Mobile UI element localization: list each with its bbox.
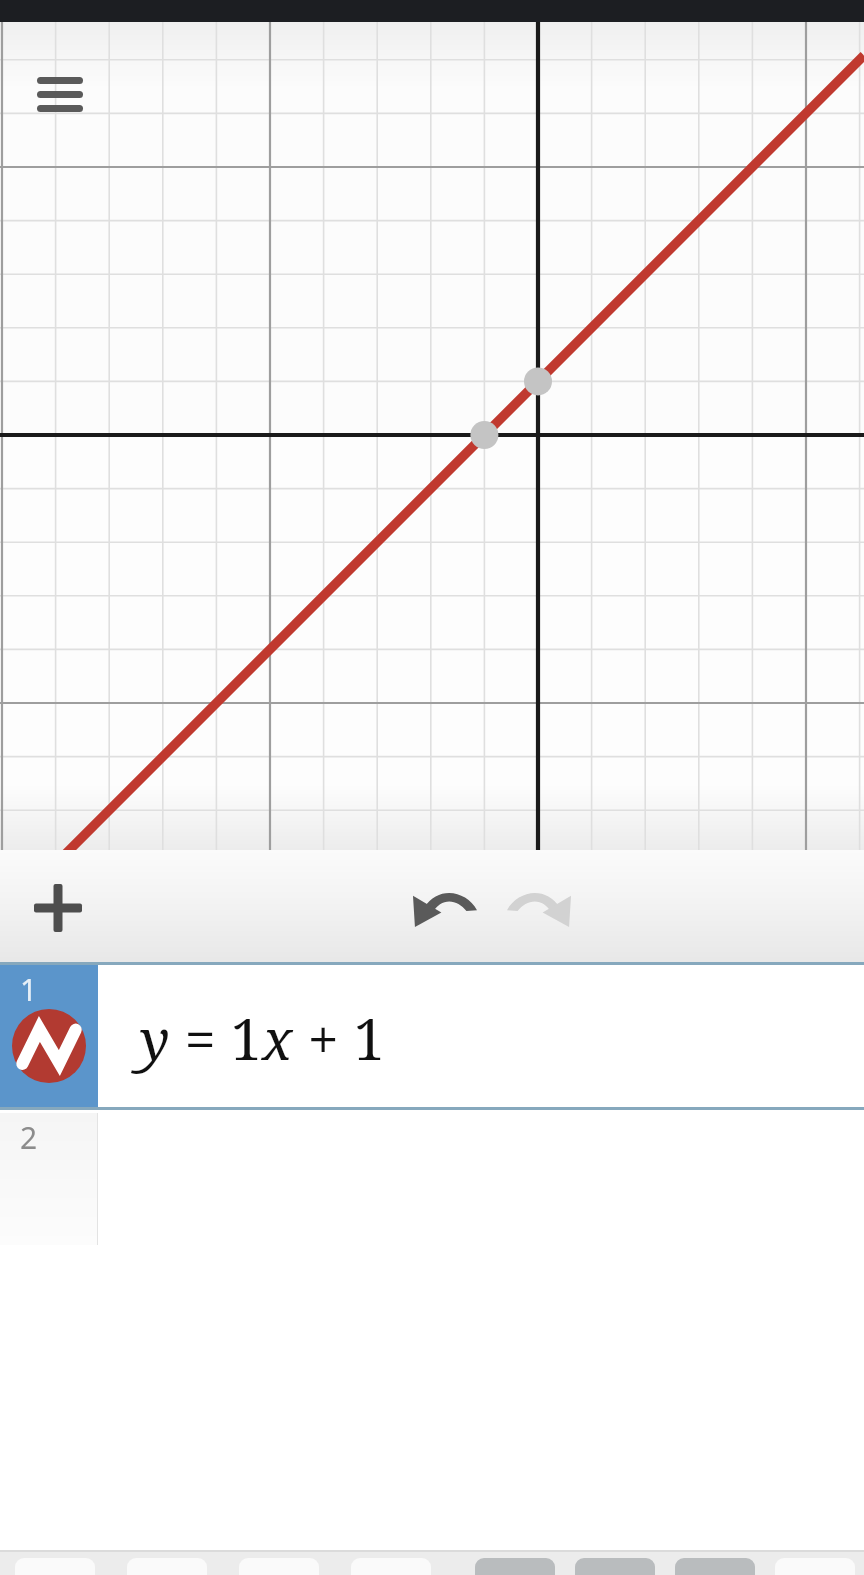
button[interactable]: Undo — [402, 874, 486, 940]
button[interactable]: Menu — [20, 60, 100, 128]
staticText: 2 — [20, 1117, 38, 1158]
staticText: + 1 — [293, 1000, 385, 1076]
button[interactable] — [675, 1558, 755, 1575]
button[interactable]: 2 — [0, 1113, 864, 1245]
button[interactable] — [575, 1558, 655, 1575]
button[interactable]: Add expression — [18, 872, 98, 944]
button[interactable]: 1 — [0, 965, 864, 1110]
button[interactable]: Redo — [498, 874, 582, 940]
staticText: 1 — [20, 969, 38, 1010]
staticText: y — [140, 1000, 170, 1076]
staticText: = 1 — [170, 1000, 262, 1076]
staticText: x — [262, 1000, 293, 1076]
button[interactable] — [475, 1558, 555, 1575]
